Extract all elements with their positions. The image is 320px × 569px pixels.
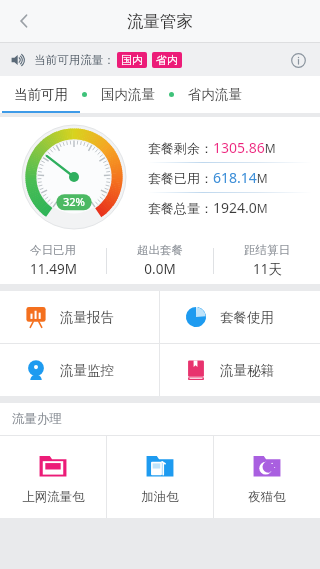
staticText: 国内 — [121, 53, 143, 67]
button[interactable]: 流量监控 — [0, 344, 159, 396]
button[interactable]: 国内 — [121, 53, 143, 67]
staticText: 超出套餐 — [137, 243, 183, 257]
button[interactable]: 套餐使用 — [160, 291, 320, 343]
staticText: 上网流量包 — [22, 489, 85, 505]
button[interactable]: 国内流量 — [101, 86, 155, 103]
staticText: 0.0M — [144, 260, 176, 278]
staticText: 流量管家 — [127, 11, 193, 32]
staticText: 流量秘籍 — [220, 362, 274, 379]
button[interactable]: 当前可用 — [14, 86, 68, 103]
staticText: 32% — [63, 194, 85, 209]
staticText: 11.49M — [30, 260, 77, 278]
staticText: 当前可用流量： — [34, 53, 115, 67]
button[interactable]: Back — [4, 1, 44, 41]
staticText: 套餐总量：1924.0M — [148, 198, 268, 217]
staticText: 距结算日 — [244, 243, 290, 257]
staticText: 11天 — [253, 260, 282, 278]
staticText: 套餐剩余：1305.86M — [148, 138, 276, 157]
button[interactable]: 上网流量包 — [0, 436, 106, 518]
staticText: 流量监控 — [60, 362, 114, 379]
button[interactable]: Info — [286, 48, 310, 72]
staticText: 今日已用 — [30, 243, 76, 257]
staticText: 加油包 — [141, 489, 179, 505]
staticText: 当前可用 — [14, 86, 68, 103]
button[interactable]: 今日已用 — [0, 243, 106, 278]
button[interactable]: 距结算日 — [214, 243, 320, 278]
staticText: 国内流量 — [101, 86, 155, 103]
staticText: 流量报告 — [60, 309, 114, 326]
button[interactable]: 夜猫包 — [214, 436, 320, 518]
staticText: 流量办理 — [12, 411, 62, 427]
staticText: 省内 — [156, 53, 178, 67]
button[interactable]: 省内流量 — [188, 86, 242, 103]
staticText: 套餐使用 — [220, 309, 274, 326]
staticText: 省内流量 — [188, 86, 242, 103]
button[interactable]: 超出套餐 — [107, 243, 213, 278]
button[interactable]: 流量秘籍 — [160, 344, 320, 396]
button[interactable]: 省内 — [156, 53, 178, 67]
button[interactable]: 加油包 — [107, 436, 213, 518]
staticText: 夜猫包 — [248, 489, 286, 505]
button[interactable]: 流量报告 — [0, 291, 159, 343]
staticText: 套餐已用：618.14M — [148, 168, 268, 187]
